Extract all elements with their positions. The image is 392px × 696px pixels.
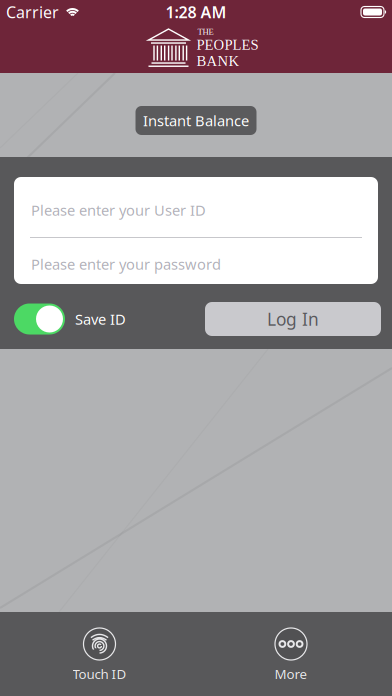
staticText: Log In (267, 307, 319, 330)
staticText: Please enter your User ID (31, 200, 206, 220)
staticText: Instant Balance (143, 111, 249, 130)
button[interactable]: Please enter your password (14, 238, 378, 284)
staticText: BANK (196, 53, 239, 69)
button[interactable]: Please enter your User ID (14, 177, 378, 237)
button[interactable]: Instant Balance (135, 106, 256, 135)
staticText: More (274, 665, 307, 683)
staticText: Touch ID (72, 665, 126, 683)
staticText: Save ID (75, 309, 126, 329)
staticText: PEOPLES (196, 37, 258, 53)
staticText: 1:28 AM (165, 1, 226, 23)
button[interactable]: Save ID (14, 303, 65, 334)
staticText: Please enter your password (31, 254, 221, 274)
button[interactable]: Log In (205, 302, 381, 336)
button[interactable]: More (274, 628, 307, 683)
staticText: Carrier (6, 1, 59, 23)
button[interactable]: Touch ID (72, 628, 126, 683)
staticText: THE (197, 27, 213, 37)
